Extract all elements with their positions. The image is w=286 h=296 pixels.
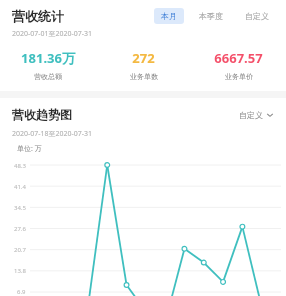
staticText: 6667.57	[214, 49, 263, 67]
staticText: 营收总额	[34, 72, 62, 81]
staticText: 2020-07-01至2020-07-31	[12, 29, 93, 39]
staticText: 单位: 万	[17, 144, 42, 154]
button[interactable]: 6667.57	[191, 49, 286, 81]
staticText: 34.5	[14, 204, 26, 212]
staticText: 181.36万	[21, 49, 75, 67]
button[interactable]: 181.36万	[0, 49, 96, 81]
staticText: 20.7	[14, 246, 26, 254]
button[interactable]: 本季度	[192, 8, 230, 24]
staticText: 本月	[161, 11, 177, 21]
staticText: 营收统计	[12, 8, 64, 24]
button[interactable]: 自定义	[238, 8, 276, 24]
staticText: 自定义	[245, 11, 269, 21]
staticText: 48.3	[14, 162, 26, 170]
staticText: 27.6	[14, 225, 26, 233]
staticText: 272	[132, 49, 155, 67]
staticText: 业务单价	[225, 72, 253, 81]
staticText: 6.9	[17, 288, 26, 296]
button[interactable]: 本月	[154, 8, 184, 24]
staticText: 业务单数	[130, 72, 158, 81]
button[interactable]: 自定义	[239, 110, 274, 120]
staticText: 营收趋势图	[12, 107, 72, 122]
staticText: 自定义	[239, 110, 263, 120]
button[interactable]: 272	[96, 49, 191, 81]
staticText: 2020-07-18至2020-07-31	[12, 129, 93, 139]
staticText: 41.4	[14, 183, 26, 191]
staticText: 13.8	[14, 267, 26, 275]
staticText: 本季度	[199, 11, 223, 21]
